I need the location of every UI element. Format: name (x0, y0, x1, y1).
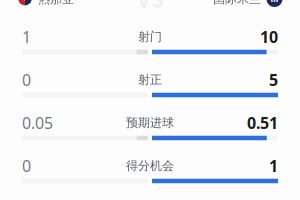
staticText: 0.51 (247, 112, 278, 133)
button[interactable]: 0 (22, 73, 278, 97)
staticText: 0.05 (22, 112, 53, 133)
staticText: 射正 (138, 72, 162, 87)
staticText: 0 (22, 155, 31, 176)
staticText: 5 (269, 69, 278, 90)
staticText: 10 (260, 26, 278, 47)
staticText: 0 (22, 69, 31, 90)
button[interactable]: 0 (22, 159, 278, 183)
staticText: 1 (269, 155, 278, 176)
staticText: 国际米兰 (213, 0, 261, 6)
staticText: 得分机会 (126, 158, 174, 173)
button[interactable]: 1 (22, 30, 278, 54)
staticText: 1 (22, 26, 31, 47)
staticText: VS (136, 0, 163, 14)
button[interactable]: 0.05 (22, 116, 278, 140)
staticText: 热那亚 (38, 0, 74, 6)
staticText: 预期进球 (126, 115, 174, 130)
staticText: 射门 (138, 29, 162, 44)
